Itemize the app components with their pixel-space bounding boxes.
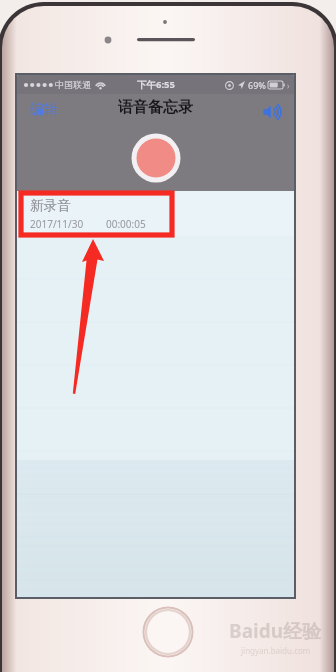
- button[interactable]: 新录音: [17, 191, 294, 236]
- staticText: 编辑: [30, 101, 58, 119]
- staticText: 中国联通: [55, 79, 91, 90]
- button[interactable]: 编辑: [25, 97, 63, 123]
- staticText: 2017/11/30: [30, 217, 84, 231]
- staticText: Baidu经验: [229, 618, 322, 644]
- button[interactable]: Record: [130, 132, 182, 184]
- staticText: ›: [287, 80, 290, 91]
- button[interactable]: Speaker: [260, 99, 286, 125]
- staticText: 00:00:05: [106, 217, 146, 231]
- staticText: 新录音: [30, 197, 71, 214]
- staticText: jingyan.baidu.com: [241, 645, 311, 656]
- staticText: 下午6:55: [137, 78, 175, 91]
- staticText: 69%: [248, 79, 266, 91]
- staticText: 语音备忘录: [118, 98, 193, 117]
